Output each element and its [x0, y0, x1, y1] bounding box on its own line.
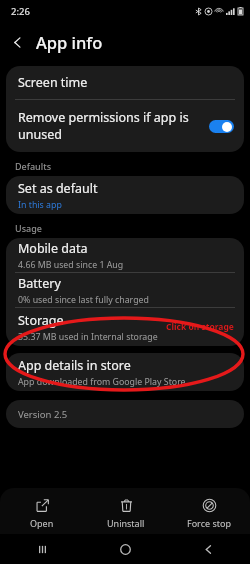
staticText: App downloaded from Google Play Store: [18, 376, 186, 388]
staticText: Defaults: [15, 160, 52, 172]
staticText: 35.37 MB used in Internal storage: [18, 331, 158, 343]
staticText: Set as default: [18, 180, 98, 197]
staticText: Open: [30, 517, 54, 529]
button[interactable]: Home: [84, 534, 167, 564]
staticText: Mobile data: [18, 240, 88, 257]
button[interactable]: Battery: [6, 273, 244, 307]
staticText: In this app: [18, 199, 62, 211]
button[interactable]: Set as default: [6, 176, 244, 214]
staticText: Remove permissions if app is unused: [18, 109, 189, 143]
button[interactable]: Remove permissions if app is unused: [6, 100, 244, 152]
button[interactable]: Uninstall: [84, 493, 167, 533]
button[interactable]: Storage: [6, 308, 244, 346]
staticText: Screen time: [18, 74, 88, 91]
staticText: Version 2.5: [18, 408, 68, 421]
button[interactable]: Open: [0, 493, 84, 533]
staticText: 0% used since last fully charged: [18, 294, 149, 306]
staticText: Usage: [15, 222, 42, 234]
button[interactable]: Remove permissions toggle: [209, 120, 234, 133]
staticText: Uninstall: [107, 517, 145, 529]
staticText: Battery: [18, 275, 61, 292]
button[interactable]: Screen time: [6, 66, 244, 99]
button[interactable]: Recents: [0, 534, 84, 564]
staticText: 2:26: [11, 5, 30, 18]
staticText: Force stop: [187, 517, 231, 529]
staticText: Click on storage: [166, 321, 234, 333]
button[interactable]: Mobile data: [6, 238, 244, 272]
staticText: Storage: [18, 312, 64, 329]
button[interactable]: Force stop: [167, 493, 250, 533]
button[interactable]: Back: [0, 25, 34, 59]
staticText: 4.66 MB used since 1 Aug: [18, 259, 124, 271]
button[interactable]: Back: [167, 534, 250, 564]
button[interactable]: App details in store: [6, 353, 244, 391]
staticText: App details in store: [18, 357, 131, 374]
staticText: App info: [36, 31, 103, 53]
